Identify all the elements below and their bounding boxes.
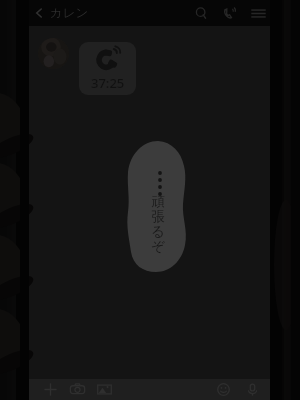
button[interactable]: Back bbox=[31, 5, 47, 21]
staticText: カレン bbox=[50, 5, 89, 21]
button[interactable]: Call bbox=[221, 4, 239, 22]
button[interactable]: Menu bbox=[249, 4, 268, 23]
button[interactable]: Add bbox=[42, 381, 59, 398]
staticText: 頑 張 る ぞ bbox=[151, 193, 165, 255]
staticText: 37:25 bbox=[91, 74, 125, 92]
button[interactable]: 37:25 bbox=[79, 42, 136, 95]
button[interactable]: Voice message bbox=[244, 381, 261, 398]
button[interactable]: Search bbox=[193, 5, 210, 22]
button[interactable]: Emoji bbox=[215, 381, 232, 398]
button[interactable]: Camera bbox=[69, 381, 86, 398]
button[interactable]: Profile picture bbox=[38, 38, 69, 69]
button[interactable]: Gallery bbox=[96, 381, 113, 398]
